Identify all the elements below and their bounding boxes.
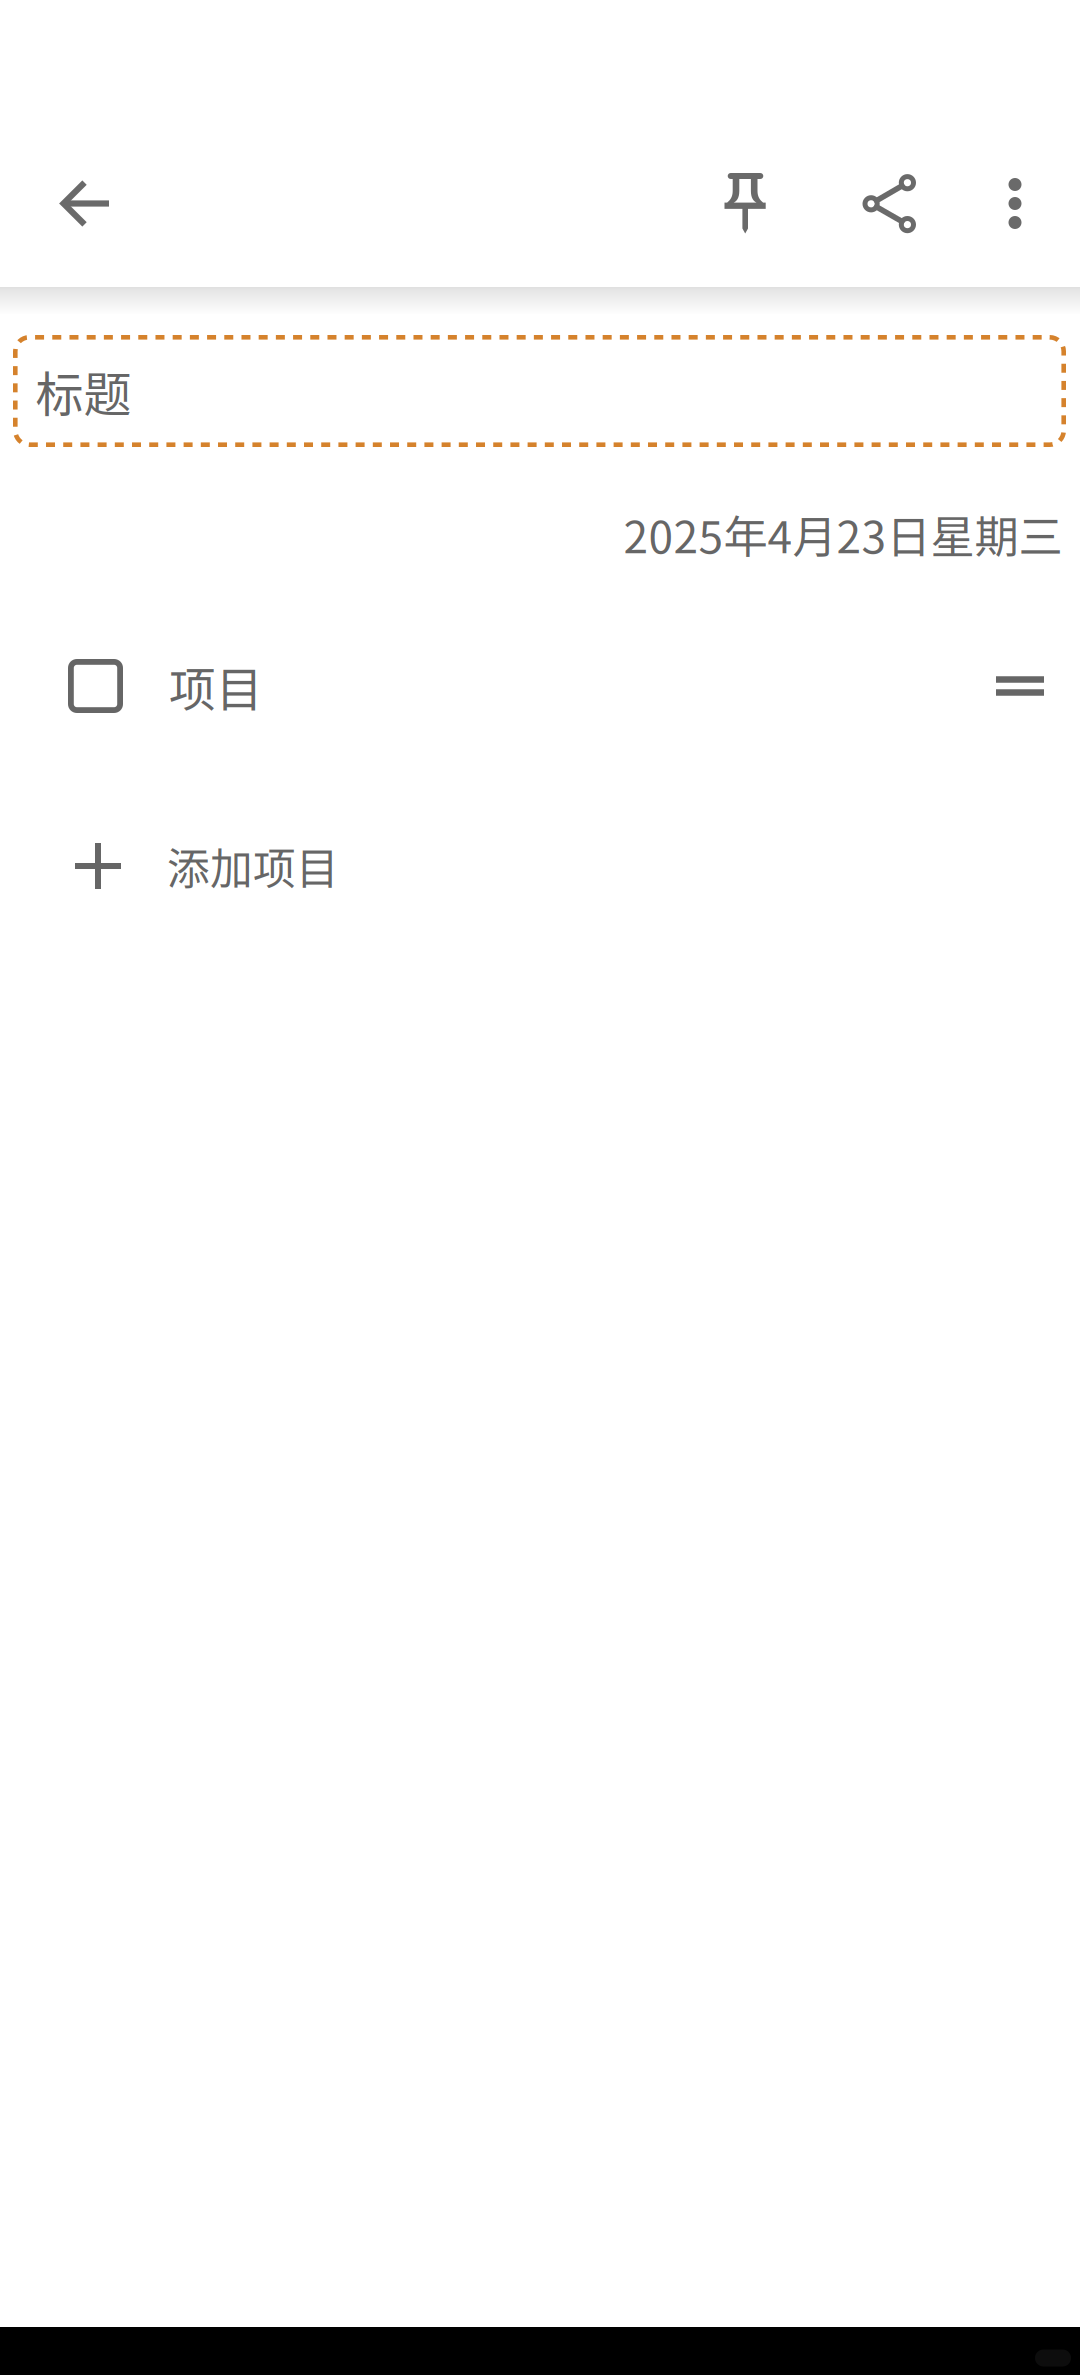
staticText: 添加项目 <box>167 835 339 897</box>
staticText: 项目 <box>169 652 263 720</box>
button[interactable]: Pin note <box>685 143 805 263</box>
staticText: 标题 <box>35 356 131 426</box>
button[interactable]: Share <box>828 143 948 263</box>
staticText: 2025年4月23日星期三 <box>623 502 1062 566</box>
button[interactable]: 项目 <box>0 626 1080 746</box>
button[interactable]: 标题 <box>13 335 1066 447</box>
button[interactable]: More options <box>955 143 1075 263</box>
button[interactable]: 添加项目 <box>0 806 1080 926</box>
button[interactable]: Back <box>25 143 145 263</box>
